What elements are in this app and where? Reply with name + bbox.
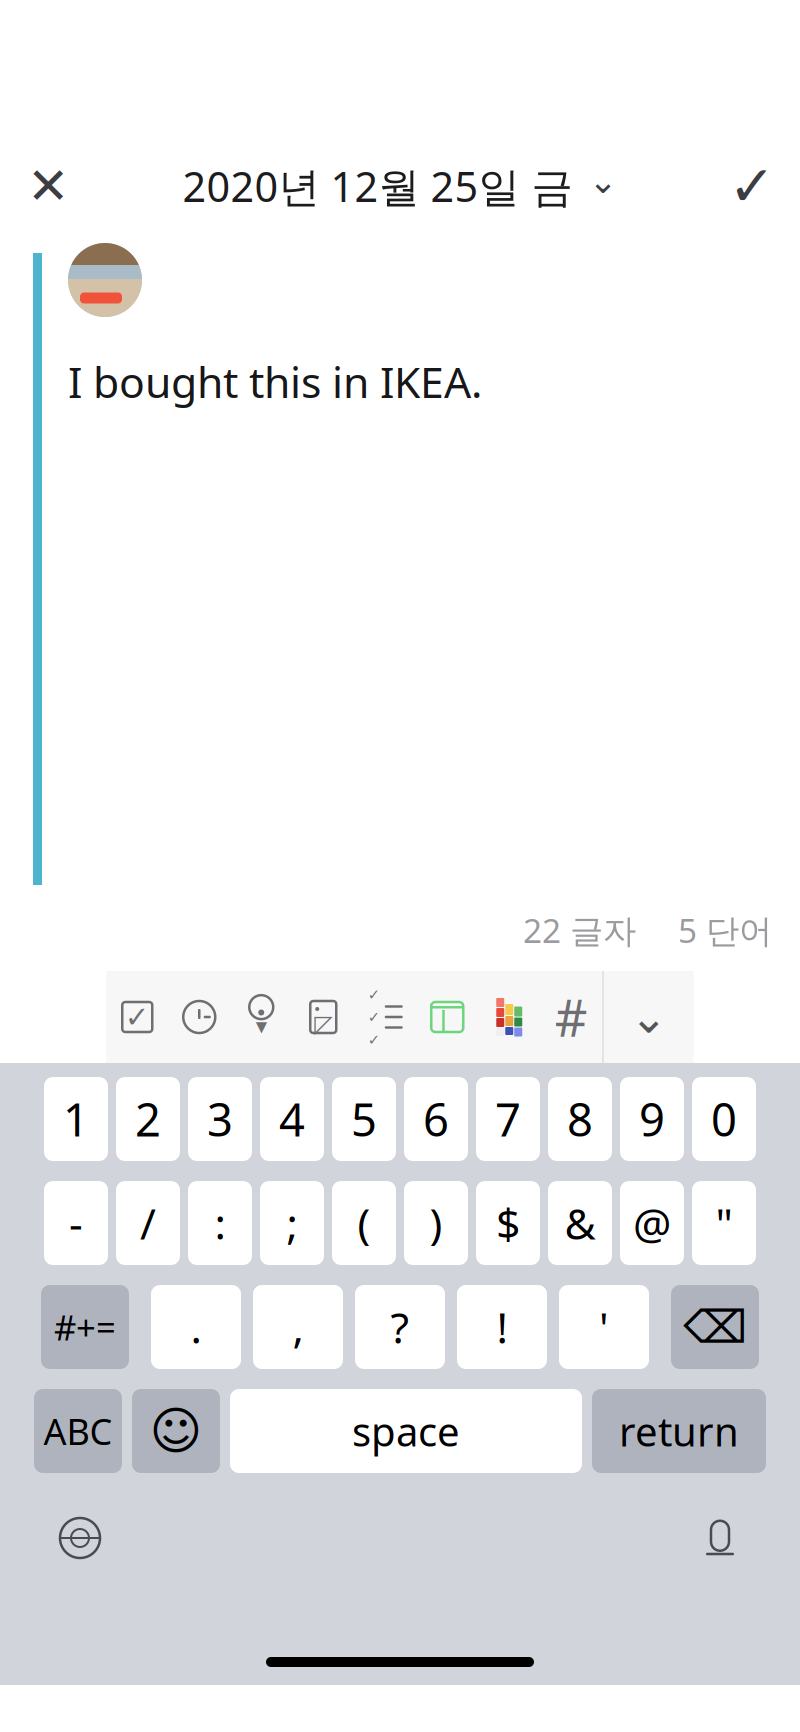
staticText: (	[357, 1195, 370, 1251]
staticText: return	[619, 1404, 739, 1457]
staticText: "	[715, 1195, 732, 1251]
button[interactable]: Close	[0, 143, 96, 229]
button[interactable]: :	[188, 1181, 252, 1265]
staticText: ⌫	[683, 1301, 747, 1353]
staticText: ✓	[368, 986, 380, 1003]
button[interactable]: 2020년 12월 25일 금	[182, 143, 617, 229]
staticText: .	[190, 1299, 201, 1355]
button[interactable]: Dictation	[672, 1495, 768, 1581]
button[interactable]: ABC	[34, 1389, 122, 1473]
button[interactable]: 6	[404, 1077, 468, 1161]
staticText: )	[429, 1195, 442, 1251]
button[interactable]: $	[476, 1181, 540, 1265]
staticText: 3	[207, 1089, 233, 1149]
staticText: ;	[286, 1195, 297, 1251]
button[interactable]: 1	[44, 1077, 108, 1161]
staticText: ✓	[125, 1000, 150, 1034]
staticText: 9	[639, 1089, 665, 1149]
staticText: 2020년 12월 25일 금	[182, 159, 572, 213]
staticText: ✓	[368, 1009, 380, 1025]
staticText: ⌄	[588, 161, 617, 201]
button[interactable]: "	[692, 1181, 756, 1265]
staticText: $	[496, 1195, 520, 1251]
staticText: I bought this in IKEA.	[68, 353, 482, 410]
button[interactable]: ?	[355, 1285, 445, 1369]
button[interactable]: Location	[230, 971, 292, 1063]
staticText: 4	[279, 1089, 305, 1149]
staticText: #	[555, 983, 588, 1051]
staticText: ◸	[314, 1010, 332, 1038]
button[interactable]: 2	[116, 1077, 180, 1161]
staticText: space	[352, 1404, 460, 1457]
staticText: ,	[292, 1299, 303, 1355]
button[interactable]: (	[332, 1181, 396, 1265]
button[interactable]: 0	[692, 1077, 756, 1161]
staticText: 8	[567, 1089, 593, 1149]
button[interactable]: Next keyboard	[32, 1495, 128, 1581]
button[interactable]: &	[548, 1181, 612, 1265]
button[interactable]: 8	[548, 1077, 612, 1161]
button[interactable]: Time	[168, 971, 230, 1063]
button[interactable]: '	[559, 1285, 649, 1369]
staticText: 5	[351, 1089, 377, 1149]
button[interactable]: 4	[260, 1077, 324, 1161]
button[interactable]: Done	[704, 143, 800, 229]
button[interactable]: 9	[620, 1077, 684, 1161]
staticText: ✓	[368, 1031, 380, 1048]
staticText: 1	[63, 1089, 89, 1149]
staticText: 22 글자	[523, 908, 636, 952]
button[interactable]: !	[457, 1285, 547, 1369]
button[interactable]: 3	[188, 1077, 252, 1161]
button[interactable]: Table	[416, 971, 478, 1063]
staticText: ✕	[27, 157, 69, 215]
staticText: 7	[495, 1089, 521, 1149]
button[interactable]: Delete	[671, 1285, 759, 1369]
staticText: &	[564, 1195, 595, 1251]
button[interactable]: @	[620, 1181, 684, 1265]
button[interactable]: Task	[106, 971, 168, 1063]
button[interactable]: /	[116, 1181, 180, 1265]
staticText: ☺	[149, 1402, 202, 1460]
button[interactable]: #+=	[41, 1285, 129, 1369]
button[interactable]: Photo	[292, 971, 354, 1063]
staticText: :	[214, 1195, 225, 1251]
button[interactable]: Tag	[540, 971, 602, 1063]
button[interactable]: )	[404, 1181, 468, 1265]
staticText: /	[140, 1195, 156, 1251]
button[interactable]: Hide keyboard	[604, 971, 694, 1063]
staticText: ✓	[728, 154, 775, 218]
staticText: -	[69, 1195, 83, 1251]
staticText: 5 단어	[678, 908, 772, 952]
button[interactable]: ;	[260, 1181, 324, 1265]
staticText: !	[496, 1299, 507, 1355]
button[interactable]: 5	[332, 1077, 396, 1161]
staticText: 6	[423, 1089, 449, 1149]
staticText: '	[599, 1299, 609, 1355]
button[interactable]: Checklist	[354, 971, 416, 1063]
staticText: ?	[390, 1299, 409, 1355]
staticText: #+=	[54, 1304, 116, 1350]
button[interactable]: return	[592, 1389, 766, 1473]
staticText: 0	[711, 1089, 737, 1149]
staticText: ▾	[256, 1013, 267, 1039]
staticText: ⌄	[630, 991, 668, 1043]
button[interactable]: Colors	[478, 971, 540, 1063]
staticText: ABC	[43, 1407, 112, 1455]
button[interactable]: -	[44, 1181, 108, 1265]
staticText: 2	[135, 1089, 161, 1149]
button[interactable]: space	[230, 1389, 582, 1473]
staticText: @	[633, 1195, 671, 1251]
button[interactable]: .	[151, 1285, 241, 1369]
button[interactable]: ,	[253, 1285, 343, 1369]
button[interactable]: Emoji	[132, 1389, 220, 1473]
button[interactable]: 7	[476, 1077, 540, 1161]
